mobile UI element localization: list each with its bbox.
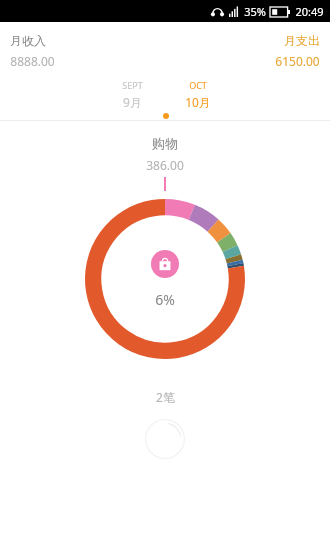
staticText: 10月 [185, 94, 211, 110]
staticText: 6150.00 [275, 53, 320, 69]
staticText: 月支出 [284, 33, 320, 48]
staticText: 20:49 [295, 4, 324, 19]
staticText: 35% [244, 4, 266, 19]
staticText: 6% [155, 290, 175, 309]
staticText: 9月 [123, 94, 142, 110]
staticText: 月收入 [10, 33, 46, 48]
button[interactable]: 月支出 [165, 33, 320, 69]
staticText: 购物 [152, 135, 178, 151]
button[interactable]: OCT [178, 79, 218, 110]
button[interactable]: Loading [145, 419, 185, 459]
staticText: 386.00 [146, 157, 184, 173]
button[interactable]: 月收入 [10, 33, 165, 69]
button[interactable]: Expense breakdown chart [85, 199, 245, 359]
staticText: OCT [189, 79, 207, 91]
staticText: SEPT [122, 79, 143, 91]
staticText: 2笔 [156, 389, 175, 405]
staticText: 8888.00 [10, 53, 55, 69]
button[interactable]: SEPT [112, 79, 152, 110]
